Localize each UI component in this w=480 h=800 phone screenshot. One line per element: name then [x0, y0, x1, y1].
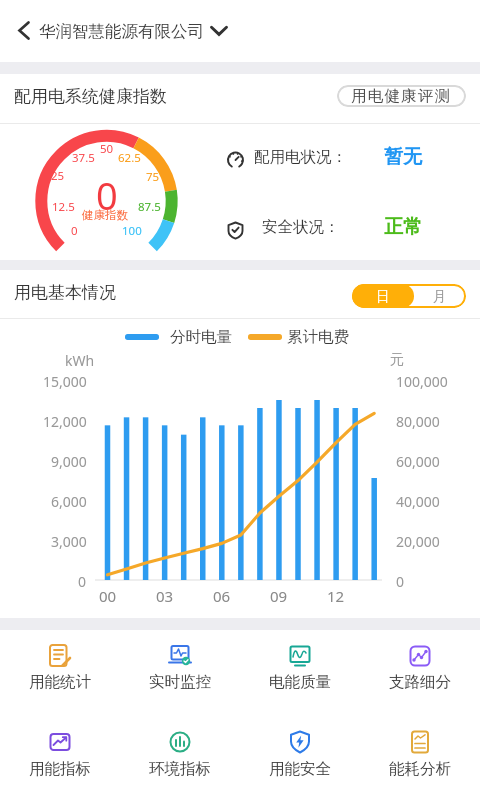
staticText: 80,000: [396, 412, 440, 431]
staticText: 实时监控: [149, 672, 211, 692]
staticText: 12.5: [52, 199, 75, 215]
staticText: 100: [122, 223, 142, 239]
button[interactable]: [245, 634, 355, 702]
staticText: 健康指数: [82, 208, 128, 222]
staticText: 用能统计: [29, 672, 91, 692]
staticText: 25: [51, 168, 65, 184]
button[interactable]: [365, 634, 475, 702]
staticText: 月: [433, 288, 447, 305]
staticText: 3,000: [51, 532, 87, 551]
staticText: 安全状况：: [262, 217, 340, 237]
staticText: 0: [78, 572, 87, 591]
staticText: 12: [327, 586, 345, 606]
staticText: 87.5: [138, 199, 161, 215]
button[interactable]: 用电健康评测: [337, 85, 466, 107]
staticText: 日: [376, 288, 390, 305]
staticText: 37.5: [72, 150, 95, 166]
staticText: 60,000: [396, 452, 440, 471]
staticText: 累计电费: [287, 327, 349, 347]
button[interactable]: [0, 0, 480, 62]
staticText: 62.5: [118, 150, 141, 166]
button[interactable]: 月: [414, 284, 466, 308]
staticText: 用能指标: [29, 759, 91, 779]
staticText: 09: [270, 586, 288, 606]
staticText: 15,000: [43, 372, 87, 391]
staticText: 分时电量: [170, 327, 232, 347]
staticText: 0: [396, 572, 405, 591]
staticText: 用电健康评测: [351, 86, 452, 106]
button[interactable]: [125, 718, 235, 786]
button[interactable]: [245, 718, 355, 786]
staticText: 50: [100, 141, 114, 157]
staticText: 9,000: [51, 452, 87, 471]
button[interactable]: [365, 718, 475, 786]
staticText: 支路细分: [389, 672, 451, 692]
staticText: 20,000: [396, 532, 440, 551]
staticText: 03: [156, 586, 174, 606]
button[interactable]: 日: [352, 284, 414, 308]
staticText: 0: [71, 223, 78, 239]
button[interactable]: [5, 634, 115, 702]
staticText: 用能安全: [269, 759, 331, 779]
staticText: 00: [99, 586, 117, 606]
staticText: 100,000: [396, 372, 448, 391]
staticText: 75: [146, 169, 160, 185]
staticText: 40,000: [396, 492, 440, 511]
staticText: 6,000: [51, 492, 87, 511]
staticText: kWh: [65, 351, 95, 370]
staticText: 元: [390, 351, 404, 369]
staticText: 能耗分析: [389, 759, 451, 779]
staticText: 配用电状况：: [254, 147, 347, 167]
staticText: 正常: [384, 215, 422, 239]
staticText: 12,000: [43, 412, 87, 431]
staticText: 暂无: [384, 145, 422, 169]
staticText: 环境指标: [149, 759, 211, 779]
staticText: 06: [213, 586, 231, 606]
staticText: 电能质量: [269, 672, 331, 692]
staticText: 配用电系统健康指数: [14, 86, 167, 107]
staticText: 0: [96, 169, 118, 213]
staticText: 华润智慧能源有限公司: [39, 21, 204, 42]
button[interactable]: [125, 634, 235, 702]
button[interactable]: [5, 718, 115, 786]
staticText: 用电基本情况: [14, 282, 116, 303]
